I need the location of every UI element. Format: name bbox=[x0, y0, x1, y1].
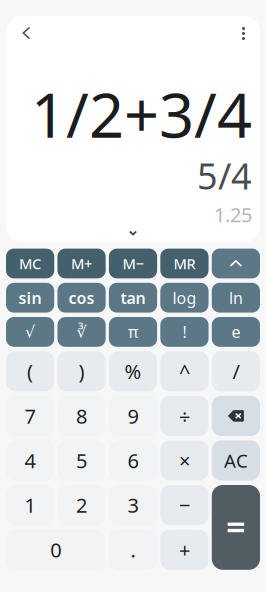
staticText: 4 bbox=[25, 447, 36, 474]
button[interactable]: cos bbox=[57, 283, 106, 313]
staticText: ) bbox=[79, 358, 85, 385]
button[interactable]: M− bbox=[109, 249, 157, 278]
button[interactable]: MC bbox=[6, 249, 54, 278]
button[interactable]: 7 bbox=[6, 396, 54, 436]
staticText: 6 bbox=[127, 447, 138, 474]
staticText: ÷ bbox=[179, 403, 190, 429]
staticText: ∛ bbox=[77, 323, 87, 341]
staticText: ln bbox=[229, 287, 243, 308]
button[interactable]: 3 bbox=[109, 485, 157, 525]
button[interactable]: − bbox=[160, 485, 208, 525]
staticText: log bbox=[172, 287, 196, 308]
button[interactable]: 1 bbox=[6, 485, 54, 525]
button[interactable]: √ bbox=[6, 317, 54, 347]
button[interactable]: 2 bbox=[57, 485, 106, 525]
staticText: 0 bbox=[50, 536, 61, 563]
button[interactable]: ln bbox=[212, 283, 260, 313]
staticText: / bbox=[232, 358, 239, 385]
button[interactable] bbox=[212, 396, 260, 436]
staticText: 5 bbox=[76, 447, 87, 474]
button[interactable]: 6 bbox=[109, 440, 157, 481]
button[interactable]: 5 bbox=[57, 440, 106, 481]
staticText: 8 bbox=[76, 403, 87, 429]
staticText: . bbox=[130, 536, 135, 563]
staticText: ^ bbox=[179, 358, 190, 385]
button[interactable]: 4 bbox=[6, 440, 54, 481]
staticText: × bbox=[179, 447, 190, 474]
button[interactable]: More options bbox=[228, 18, 258, 48]
staticText: 1 bbox=[25, 492, 36, 518]
button[interactable]: AC bbox=[212, 440, 260, 481]
button[interactable]: Back bbox=[11, 18, 41, 48]
staticText: 5/4 bbox=[197, 152, 252, 199]
staticText: 3 bbox=[127, 492, 138, 518]
staticText: cos bbox=[69, 287, 95, 308]
staticText: MR bbox=[173, 254, 195, 273]
staticText: π bbox=[128, 321, 138, 342]
staticText: ! bbox=[182, 321, 186, 342]
staticText: 1/2+3/4 bbox=[31, 73, 252, 155]
staticText: M+ bbox=[71, 254, 92, 273]
button[interactable]: 9 bbox=[109, 396, 157, 436]
button[interactable] bbox=[212, 485, 260, 570]
staticText: 1.25 bbox=[214, 201, 252, 228]
staticText: M− bbox=[122, 254, 143, 273]
button[interactable]: ^ bbox=[160, 351, 208, 391]
button[interactable]: . bbox=[109, 530, 157, 570]
staticText: − bbox=[179, 492, 190, 518]
button[interactable]: tan bbox=[109, 283, 157, 313]
button[interactable]: M+ bbox=[57, 249, 106, 278]
button[interactable]: / bbox=[212, 351, 260, 391]
button[interactable]: % bbox=[109, 351, 157, 391]
button[interactable]: ∛ bbox=[57, 317, 106, 347]
staticText: AC bbox=[224, 448, 248, 473]
button[interactable] bbox=[212, 249, 260, 278]
staticText: + bbox=[179, 536, 190, 563]
staticText: tan bbox=[120, 287, 145, 308]
staticText: 7 bbox=[25, 403, 36, 429]
staticText: ( bbox=[27, 358, 33, 385]
staticText: 2 bbox=[76, 492, 87, 518]
button[interactable]: ÷ bbox=[160, 396, 208, 436]
staticText: sin bbox=[19, 287, 42, 308]
button[interactable]: MR bbox=[160, 249, 208, 278]
button[interactable]: + bbox=[160, 530, 208, 570]
button[interactable]: ) bbox=[57, 351, 106, 391]
staticText: e bbox=[231, 321, 240, 342]
button[interactable]: 0 bbox=[6, 530, 106, 570]
button[interactable]: ! bbox=[160, 317, 208, 347]
button[interactable]: × bbox=[160, 440, 208, 481]
staticText: √ bbox=[25, 323, 35, 341]
staticText: 9 bbox=[127, 403, 138, 429]
staticText: MC bbox=[19, 254, 41, 273]
staticText: % bbox=[124, 358, 141, 385]
button[interactable]: 8 bbox=[57, 396, 106, 436]
button[interactable]: e bbox=[212, 317, 260, 347]
button[interactable]: log bbox=[160, 283, 208, 313]
button[interactable]: ( bbox=[6, 351, 54, 391]
button[interactable]: sin bbox=[6, 283, 54, 313]
button[interactable]: π bbox=[109, 317, 157, 347]
